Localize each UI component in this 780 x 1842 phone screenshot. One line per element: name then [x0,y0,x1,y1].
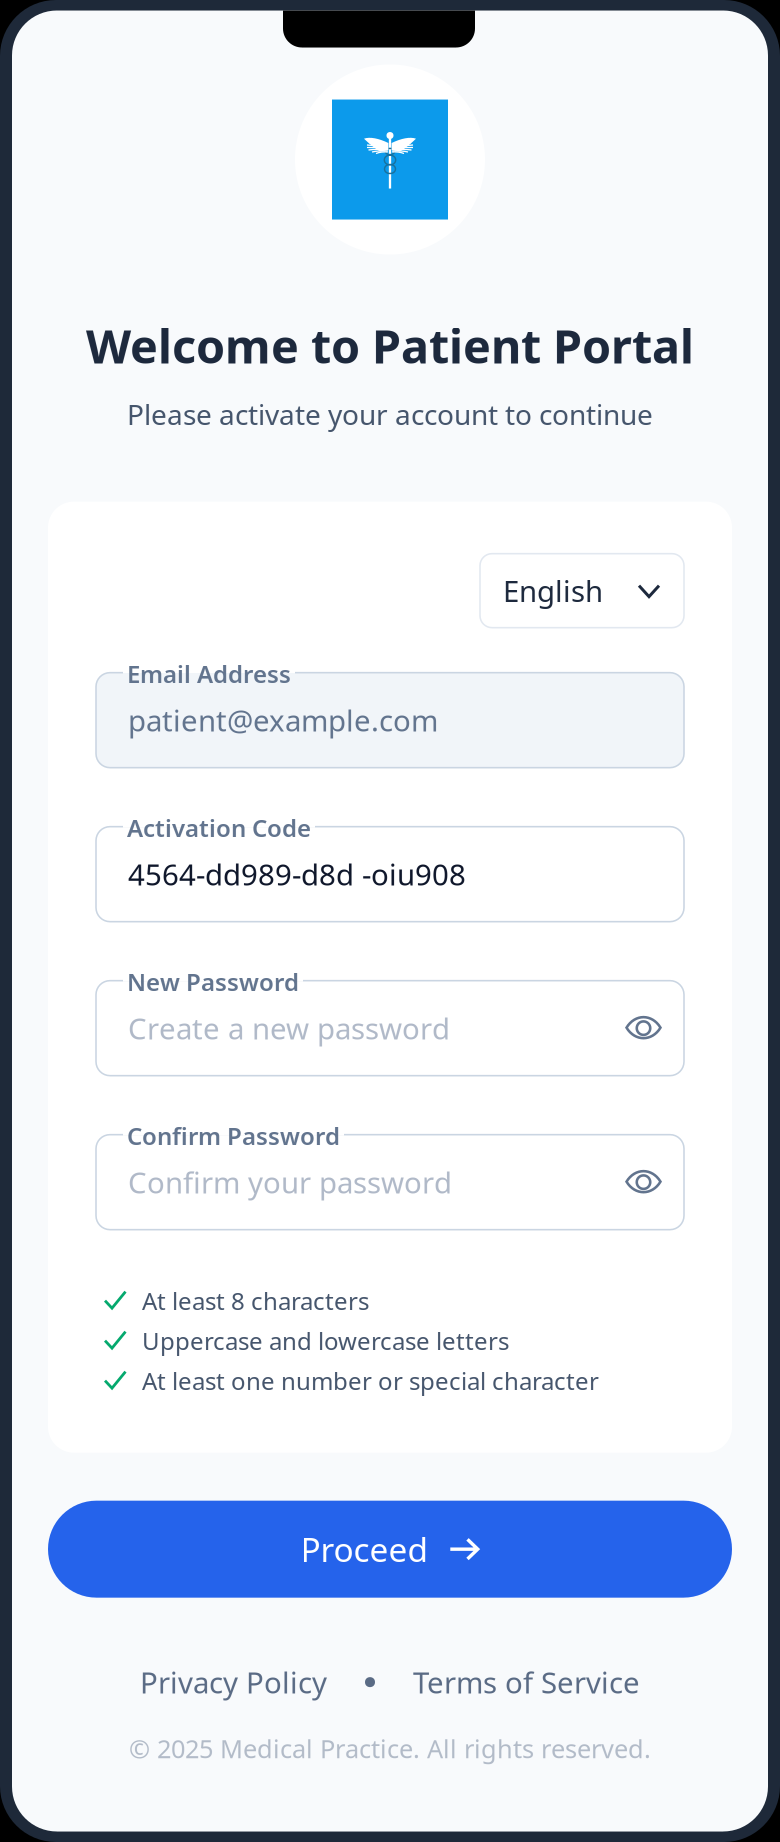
button[interactable]: Proceed [48,1501,732,1598]
button[interactable]: Terms of Service [413,1663,640,1702]
button[interactable]: Show password [625,1013,662,1043]
staticText: Privacy Policy [140,1663,327,1702]
button[interactable]: Show password [625,1167,662,1197]
staticText: Confirm your password [128,1163,452,1202]
staticText: Activation Code [127,812,311,844]
staticText: 4564-dd989-d8d -oiu908 [128,855,466,894]
staticText: patient@example.com [128,701,438,740]
staticText: Proceed [300,1527,428,1571]
staticText: New Password [127,966,299,998]
staticText: Please activate your account to continue [127,395,653,433]
staticText: Uppercase and lowercase letters [142,1325,509,1357]
button[interactable]: Privacy Policy [140,1663,327,1702]
staticText: At least one number or special character [142,1365,599,1397]
staticText: Create a new password [128,1009,450,1048]
staticText: Welcome to Patient Portal [86,314,694,376]
staticText: At least 8 characters [142,1285,369,1317]
staticText: Terms of Service [413,1663,640,1702]
staticText: English [503,571,603,610]
staticText: Email Address [127,658,291,690]
button[interactable]: English [480,554,684,628]
staticText: Confirm Password [127,1120,340,1152]
staticText: © 2025 Medical Practice. All rights rese… [129,1732,651,1765]
